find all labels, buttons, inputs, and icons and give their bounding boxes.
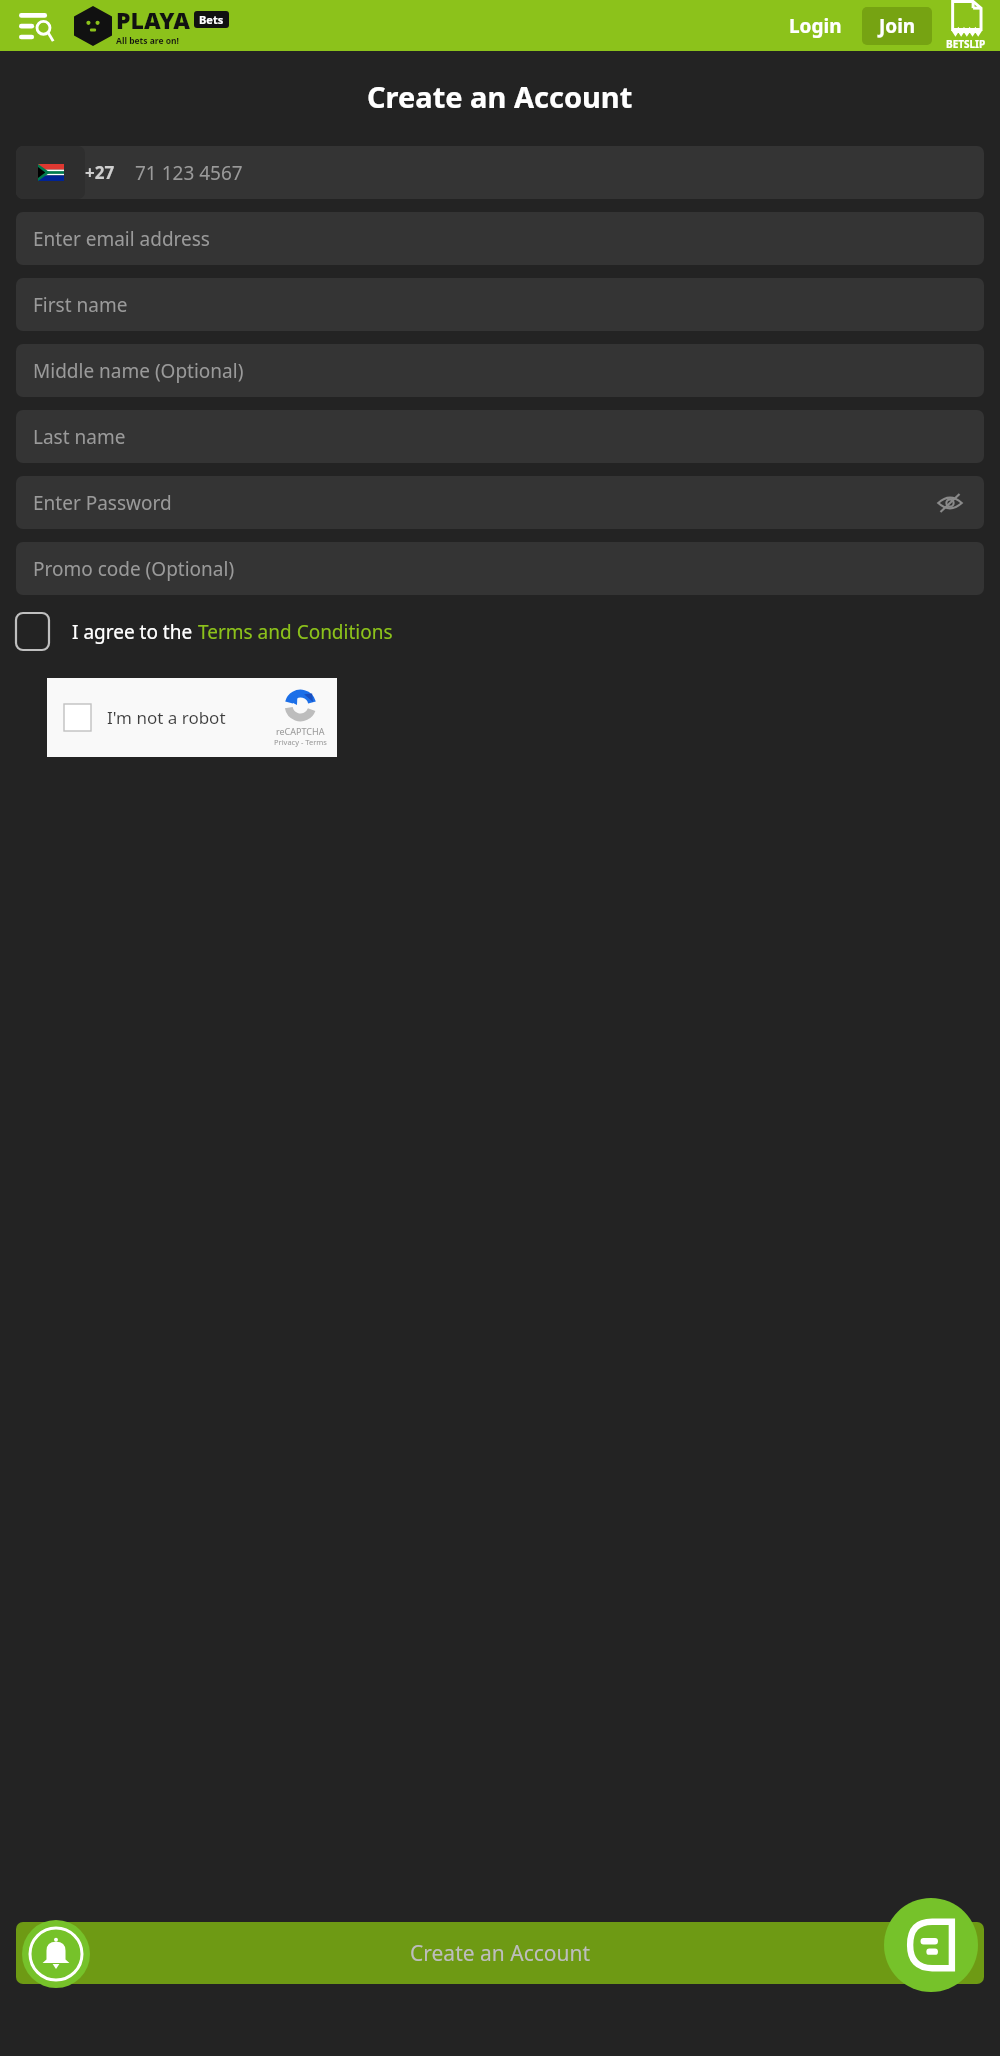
staticText: Promo code (Optional) (33, 556, 235, 582)
button[interactable]: I'm not a robot (47, 678, 337, 757)
staticText: BETSLIP (946, 37, 986, 51)
button[interactable]: Last name (16, 410, 984, 463)
staticText: reCAPTCHA (276, 725, 325, 737)
button[interactable]: Betslip (946, 0, 986, 51)
button[interactable]: Middle name (Optional) (16, 344, 984, 397)
staticText: Enter Password (33, 490, 172, 516)
button[interactable]: Promo code (Optional) (16, 542, 984, 595)
button[interactable]: Select country code (16, 146, 984, 199)
button[interactable]: Select country code (16, 146, 85, 199)
staticText: I agree to the (72, 619, 198, 645)
staticText: Login (789, 13, 842, 39)
staticText: Last name (33, 424, 126, 450)
button[interactable]: Support chat (884, 1898, 978, 1992)
staticText: Join (879, 13, 916, 39)
button[interactable]: Join (862, 7, 932, 45)
staticText: I'm not a robot (107, 706, 226, 729)
staticText: +27 (85, 161, 115, 184)
staticText: PLAYA (116, 4, 190, 35)
staticText: All bets are on! (116, 35, 180, 47)
staticText: Create an Account (410, 1939, 591, 1968)
button[interactable]: Login (781, 13, 850, 39)
staticText: Bets (199, 12, 224, 27)
button[interactable]: Notifications (22, 1920, 90, 1988)
staticText: Terms and Conditions (198, 619, 393, 645)
staticText: Create an Account (367, 77, 633, 116)
staticText: First name (33, 292, 128, 318)
button[interactable]: Create an Account (16, 1922, 984, 1984)
button[interactable]: Menu and search (14, 3, 60, 49)
staticText: 71 123 4567 (135, 160, 243, 186)
staticText: Middle name (Optional) (33, 358, 244, 384)
staticText: Privacy - Terms (274, 737, 327, 747)
button[interactable]: First name (16, 278, 984, 331)
button[interactable]: Show password (933, 486, 967, 520)
button[interactable]: I agree to the (16, 613, 984, 650)
button[interactable]: Enter email address (16, 212, 984, 265)
staticText: Enter email address (33, 226, 210, 252)
button[interactable]: Enter Password (16, 476, 984, 529)
